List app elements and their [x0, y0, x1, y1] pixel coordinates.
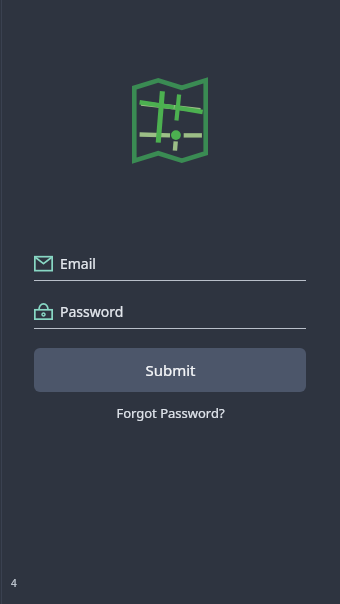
staticText: Forgot Password? [116, 404, 225, 422]
staticText: Password [60, 302, 124, 321]
button[interactable]: Submit [34, 348, 306, 392]
staticText: Submit [145, 360, 196, 380]
other: Password [34, 303, 53, 320]
other: Email [34, 255, 53, 272]
staticText: Email [60, 254, 96, 273]
button[interactable]: Email [0, 254, 340, 281]
staticText: 4 [11, 576, 17, 590]
button[interactable]: Password [0, 302, 340, 329]
button[interactable]: Forgot Password? [0, 400, 340, 426]
